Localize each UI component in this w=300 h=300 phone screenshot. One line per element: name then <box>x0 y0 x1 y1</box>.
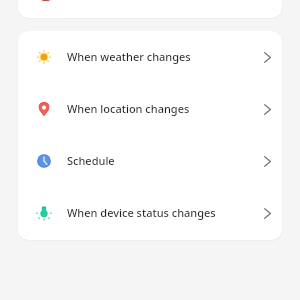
button[interactable]: When weather changes <box>18 31 282 83</box>
staticText: When weather changes <box>67 49 191 64</box>
staticText: When device status changes <box>67 205 216 220</box>
button[interactable]: Schedule <box>18 135 282 187</box>
button[interactable]: When device status changes <box>18 187 282 239</box>
button[interactable]: When location changes <box>18 83 282 135</box>
staticText: Schedule <box>67 153 115 168</box>
staticText: When location changes <box>67 101 190 116</box>
